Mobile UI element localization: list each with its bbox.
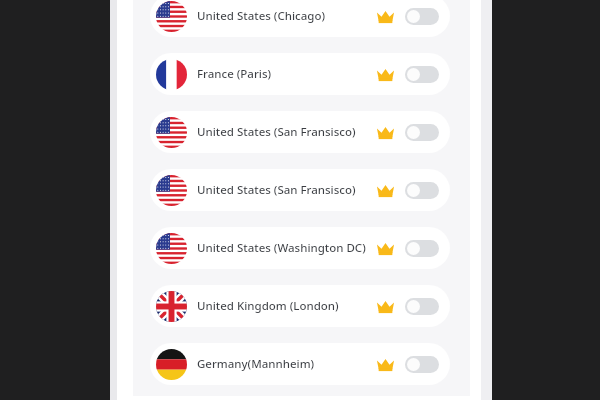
button[interactable]: United States (Washington DC) [150,227,450,269]
other: Premium [376,9,395,24]
button[interactable]: Toggle location [405,8,439,25]
other: Premium [376,183,395,198]
button[interactable]: United States (San Fransisco) [150,111,450,153]
staticText: United States (San Fransisco) [197,182,373,198]
button[interactable]: Toggle location [405,298,439,315]
button[interactable]: Germany(Mannheim) [150,343,450,385]
staticText: United Kingdom (London) [197,298,373,314]
button[interactable]: Toggle location [405,356,439,373]
staticText: France (Paris) [197,66,373,82]
staticText: United States (Washington DC) [197,240,373,256]
button[interactable]: Toggle location [405,182,439,199]
button[interactable]: United States (San Fransisco) [150,169,450,211]
other: Premium [376,125,395,140]
button[interactable]: Toggle location [405,124,439,141]
other: Premium [376,67,395,82]
staticText: United States (Chicago) [197,8,373,24]
staticText: United States (San Fransisco) [197,124,373,140]
other: Premium [376,299,395,314]
button[interactable]: United Kingdom (London) [150,285,450,327]
other: Premium [376,241,395,256]
button[interactable]: United States (Chicago) [150,0,450,37]
staticText: Germany(Mannheim) [197,356,373,372]
other: Premium [376,357,395,372]
button[interactable]: Toggle location [405,240,439,257]
button[interactable]: France (Paris) [150,53,450,95]
button[interactable]: Toggle location [405,66,439,83]
